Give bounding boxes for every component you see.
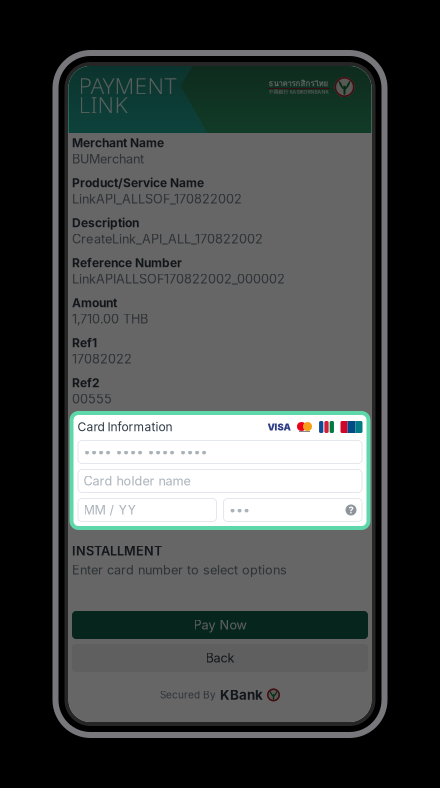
staticText: PAYMENT [78,70,176,101]
staticText: LinkAPIALLSOF170822002_000002 [72,271,285,287]
staticText: Card holder name [83,473,190,489]
staticText: BUMerchant [72,151,144,167]
staticText: Enter card number to select options [72,562,287,578]
staticText: CreateLink_API_ALL_170822002 [72,231,263,247]
staticText: 17082022 [72,351,132,367]
staticText: Card Information [77,420,172,434]
staticText: Ref1 [72,336,97,350]
staticText: Secured By [160,689,216,701]
staticText: 1,710.00 THB [72,311,148,327]
staticText: Back [205,650,234,666]
button[interactable]: Pay Now [72,611,368,639]
button[interactable]: Back [72,644,368,672]
staticText: Description [72,216,139,230]
button[interactable]: ••• [223,498,362,522]
staticText: Amount [72,296,117,310]
staticText: KBank [220,687,263,703]
button[interactable]: Card holder name [77,469,362,493]
staticText: ? [348,504,353,516]
button[interactable]: •••• •••• •••• •••• [77,440,362,464]
button[interactable]: MM / YY [77,498,217,522]
staticText: VISA [267,421,290,433]
staticText: LinkAPI_ALLSOF_170822002 [72,191,242,207]
staticText: Pay Now [193,617,246,633]
staticText: Merchant Name [72,136,164,150]
staticText: Ref2 [72,376,100,390]
staticText: 中国銀行 KASIKORNBANK [268,89,328,95]
staticText: ••• [229,502,250,518]
staticText: Reference Number [72,256,182,270]
staticText: 00555 [72,391,112,407]
staticText: INSTALLMENT [72,543,162,559]
staticText: LINK [78,89,127,120]
staticText: •••• •••• •••• •••• [83,444,207,460]
staticText: Product/Service Name [72,176,204,190]
staticText: MM / YY [83,502,136,518]
staticText: ธนาคารกสิกรไทย [268,77,328,90]
